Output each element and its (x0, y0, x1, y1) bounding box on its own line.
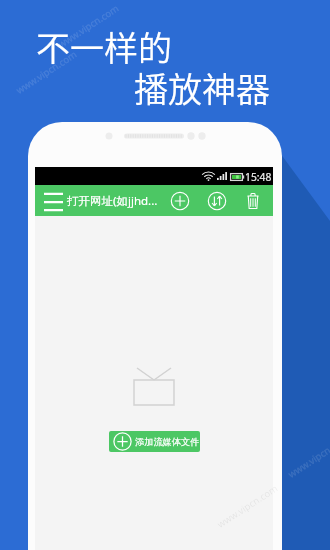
staticText: 15:48 (245, 170, 272, 184)
staticText: www.vipcn.com (55, 2, 121, 50)
button[interactable]: Transfer (206, 190, 228, 212)
staticText: 打开网址(如jjhd... (67, 193, 158, 209)
staticText: 添加流媒体文件 (135, 436, 200, 448)
button[interactable]: Menu (42, 191, 65, 213)
staticText: 播放神器 (134, 63, 270, 112)
staticText: 不一样的 (36, 22, 172, 71)
staticText: www.vipcn.com (214, 482, 280, 530)
staticText: www.vipcn.com (285, 432, 330, 480)
button[interactable]: Delete (242, 190, 264, 212)
button[interactable]: 添加流媒体文件 (109, 431, 200, 452)
button[interactable]: Add (169, 190, 191, 212)
staticText: www.vipcn.com (13, 48, 79, 96)
